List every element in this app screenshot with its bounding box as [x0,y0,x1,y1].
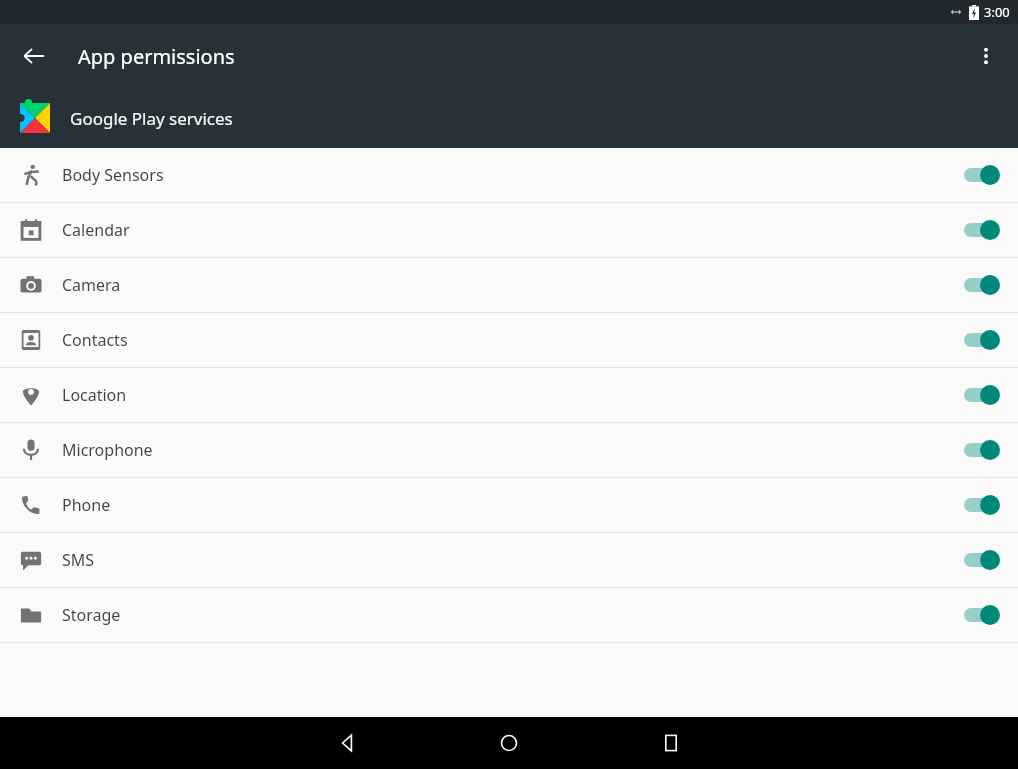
staticText: Contacts [62,329,128,351]
staticText: 3:00 [984,3,1010,21]
button[interactable]: Storage [0,588,1018,642]
staticText: Camera [62,274,121,296]
button[interactable]: Microphone [0,423,1018,477]
staticText: Location [62,384,127,406]
button[interactable]: Camera permission toggle [944,258,1018,312]
button[interactable]: Google Play services [0,88,1018,148]
button[interactable]: Recent apps [590,717,752,769]
button[interactable]: More options [962,32,1010,80]
button[interactable]: Body Sensors [0,148,1018,202]
button[interactable]: SMS [0,533,1018,587]
button[interactable]: Home [428,717,590,769]
button[interactable]: Back [266,717,428,769]
staticText: Google Play services [70,107,233,130]
button[interactable]: SMS permission toggle [944,533,1018,587]
staticText: Calendar [62,219,130,241]
button[interactable]: Calendar [0,203,1018,257]
button[interactable]: Calendar permission toggle [944,203,1018,257]
button[interactable]: Phone permission toggle [944,478,1018,532]
button[interactable]: Location [0,368,1018,422]
button[interactable]: Camera [0,258,1018,312]
button[interactable]: Contacts permission toggle [944,313,1018,367]
staticText: Storage [62,604,121,626]
button[interactable]: Phone [0,478,1018,532]
button[interactable]: Body Sensors permission toggle [944,148,1018,202]
button[interactable]: Storage permission toggle [944,588,1018,642]
staticText: Body Sensors [62,164,164,186]
staticText: Phone [62,494,111,516]
staticText: SMS [62,549,95,571]
button[interactable]: Microphone permission toggle [944,423,1018,477]
button[interactable]: Back [10,32,58,80]
button[interactable]: Contacts [0,313,1018,367]
staticText: App permissions [78,43,235,70]
button[interactable]: Location permission toggle [944,368,1018,422]
staticText: Microphone [62,439,153,461]
